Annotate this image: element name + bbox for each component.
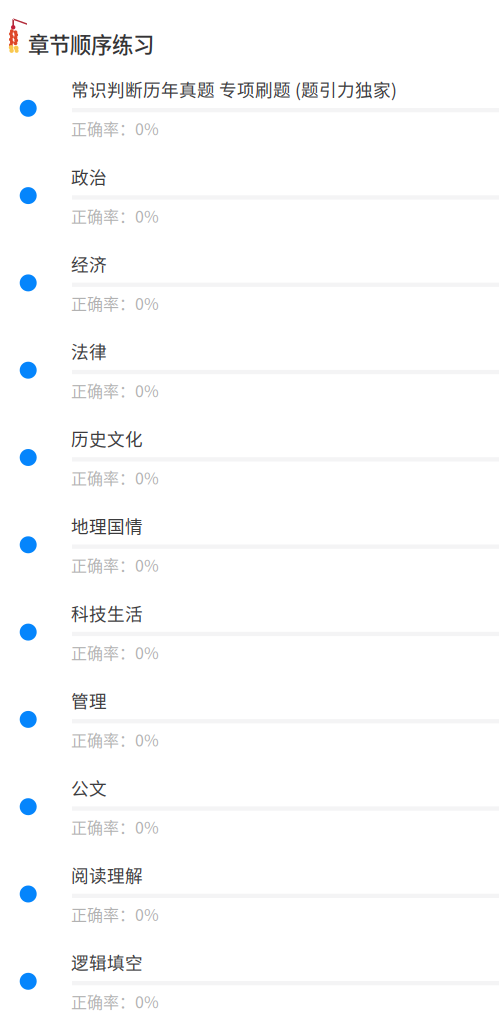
staticText: 正确率：0% (71, 117, 159, 140)
staticText: 管理 (71, 687, 107, 713)
button[interactable]: 逻辑填空 (0, 945, 499, 1014)
staticText: 阅读理解 (71, 862, 143, 887)
staticText: 公文 (71, 775, 107, 800)
staticText: 正确率：0% (71, 641, 159, 664)
staticText: 正确率：0% (71, 466, 159, 489)
staticText: 正确率：0% (71, 990, 159, 1013)
button[interactable]: 历史文化 (0, 421, 499, 508)
staticText: 历史文化 (71, 425, 143, 451)
staticText: 常识判断历年真题 专项刷题 (题引力独家) (71, 76, 397, 102)
staticText: 法律 (71, 338, 107, 364)
staticText: 正确率：0% (71, 815, 159, 838)
button[interactable]: 经济 (0, 246, 499, 334)
staticText: 正确率：0% (71, 204, 159, 227)
button[interactable]: 政治 (0, 159, 499, 246)
staticText: 地理国情 (71, 513, 143, 538)
button[interactable]: 常识判断历年真题 专项刷题 (题引力独家) (0, 72, 499, 159)
staticText: 科技生活 (71, 600, 143, 625)
button[interactable]: 阅读理解 (0, 857, 499, 945)
button[interactable]: 公文 (0, 770, 499, 857)
staticText: 政治 (71, 163, 107, 189)
button[interactable]: 科技生活 (0, 596, 499, 683)
staticText: 章节顺序练习 (28, 28, 154, 59)
button[interactable]: 地理国情 (0, 508, 499, 596)
staticText: 正确率：0% (71, 553, 159, 576)
staticText: 经济 (71, 251, 107, 276)
staticText: 正确率：0% (71, 902, 159, 926)
button[interactable]: 管理 (0, 683, 499, 770)
staticText: 正确率：0% (71, 728, 159, 751)
button[interactable]: 法律 (0, 334, 499, 421)
staticText: 正确率：0% (71, 291, 159, 315)
staticText: 逻辑填空 (71, 949, 143, 975)
staticText: 正确率：0% (71, 379, 159, 402)
